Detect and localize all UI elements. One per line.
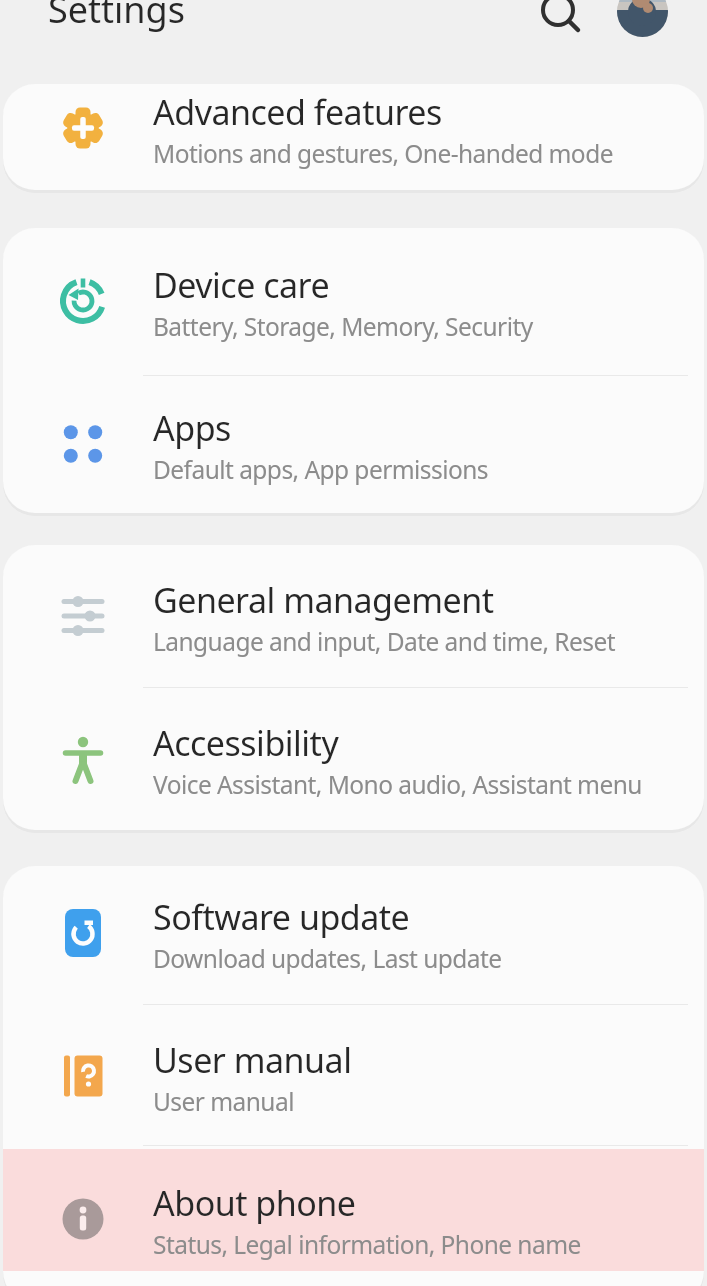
staticText: Voice Assistant, Mono audio, Assistant m…	[153, 768, 642, 801]
button[interactable]	[617, 0, 668, 37]
button[interactable]: Software update	[3, 866, 704, 1004]
button[interactable]	[536, 0, 592, 44]
staticText: Advanced features	[153, 89, 442, 135]
button[interactable]: User manual	[3, 1004, 704, 1145]
staticText: General management	[153, 577, 494, 623]
button[interactable]: About phone	[3, 1145, 704, 1286]
button[interactable]: Device care	[3, 228, 704, 375]
staticText: About phone	[153, 1180, 356, 1226]
staticText: Settings	[48, 0, 185, 34]
staticText: Device care	[153, 262, 330, 308]
staticText: Default apps, App permissions	[153, 453, 489, 486]
staticText: Accessibility	[153, 720, 339, 766]
staticText: Motions and gestures, One-handed mode	[153, 137, 613, 170]
button[interactable]: Apps	[3, 375, 704, 513]
staticText: User manual	[153, 1085, 294, 1118]
button[interactable]: General management	[3, 545, 704, 687]
staticText: Download updates, Last update	[153, 942, 502, 975]
staticText: Status, Legal information, Phone name	[153, 1228, 581, 1261]
staticText: Battery, Storage, Memory, Security	[153, 310, 533, 343]
button[interactable]: Accessibility	[3, 687, 704, 830]
staticText: Language and input, Date and time, Reset	[153, 625, 615, 658]
staticText: User manual	[153, 1037, 352, 1083]
staticText: Software update	[153, 894, 410, 940]
button[interactable]: Advanced features	[3, 84, 704, 190]
staticText: Apps	[153, 405, 231, 451]
